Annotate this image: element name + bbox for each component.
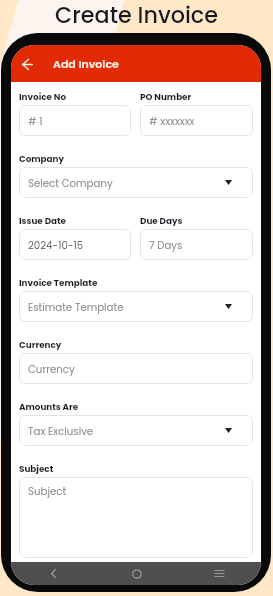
staticText: # 1: [28, 114, 43, 128]
button[interactable]: # xxxxxxx: [140, 105, 253, 136]
staticText: Tax Exclusive: [28, 424, 94, 438]
staticText: Add Invoice: [53, 56, 119, 71]
button[interactable]: Back: [18, 55, 36, 73]
button[interactable]: # 1: [19, 105, 131, 136]
button[interactable]: 2024-10-15: [19, 229, 131, 260]
staticText: Due Days: [140, 215, 183, 227]
button[interactable]: Estimate Template: [19, 291, 253, 322]
button[interactable]: Subject: [19, 477, 253, 558]
staticText: Create Invoice: [55, 0, 218, 27]
staticText: Subject: [19, 463, 54, 475]
staticText: Currency: [28, 362, 75, 376]
staticText: Estimate Template: [28, 300, 124, 314]
staticText: Select Company: [28, 176, 113, 190]
staticText: Currency: [19, 339, 62, 351]
button[interactable]: Recent apps: [178, 569, 261, 578]
button[interactable]: Select Company: [19, 167, 253, 198]
staticText: Company: [19, 153, 65, 165]
staticText: PO Number: [140, 91, 192, 103]
staticText: Amounts Are: [19, 401, 79, 413]
staticText: Invoice Template: [19, 277, 98, 289]
button[interactable]: Back: [11, 569, 95, 578]
staticText: # xxxxxxx: [149, 114, 195, 128]
staticText: 7 Days: [149, 238, 183, 252]
button[interactable]: 7 Days: [140, 229, 253, 260]
staticText: 2024-10-15: [28, 238, 84, 252]
button[interactable]: Currency: [19, 353, 253, 384]
staticText: Subject: [28, 484, 67, 498]
staticText: Issue Date: [19, 215, 66, 227]
button[interactable]: Home: [95, 569, 178, 579]
staticText: Invoice No: [19, 91, 67, 103]
button[interactable]: Tax Exclusive: [19, 415, 253, 446]
